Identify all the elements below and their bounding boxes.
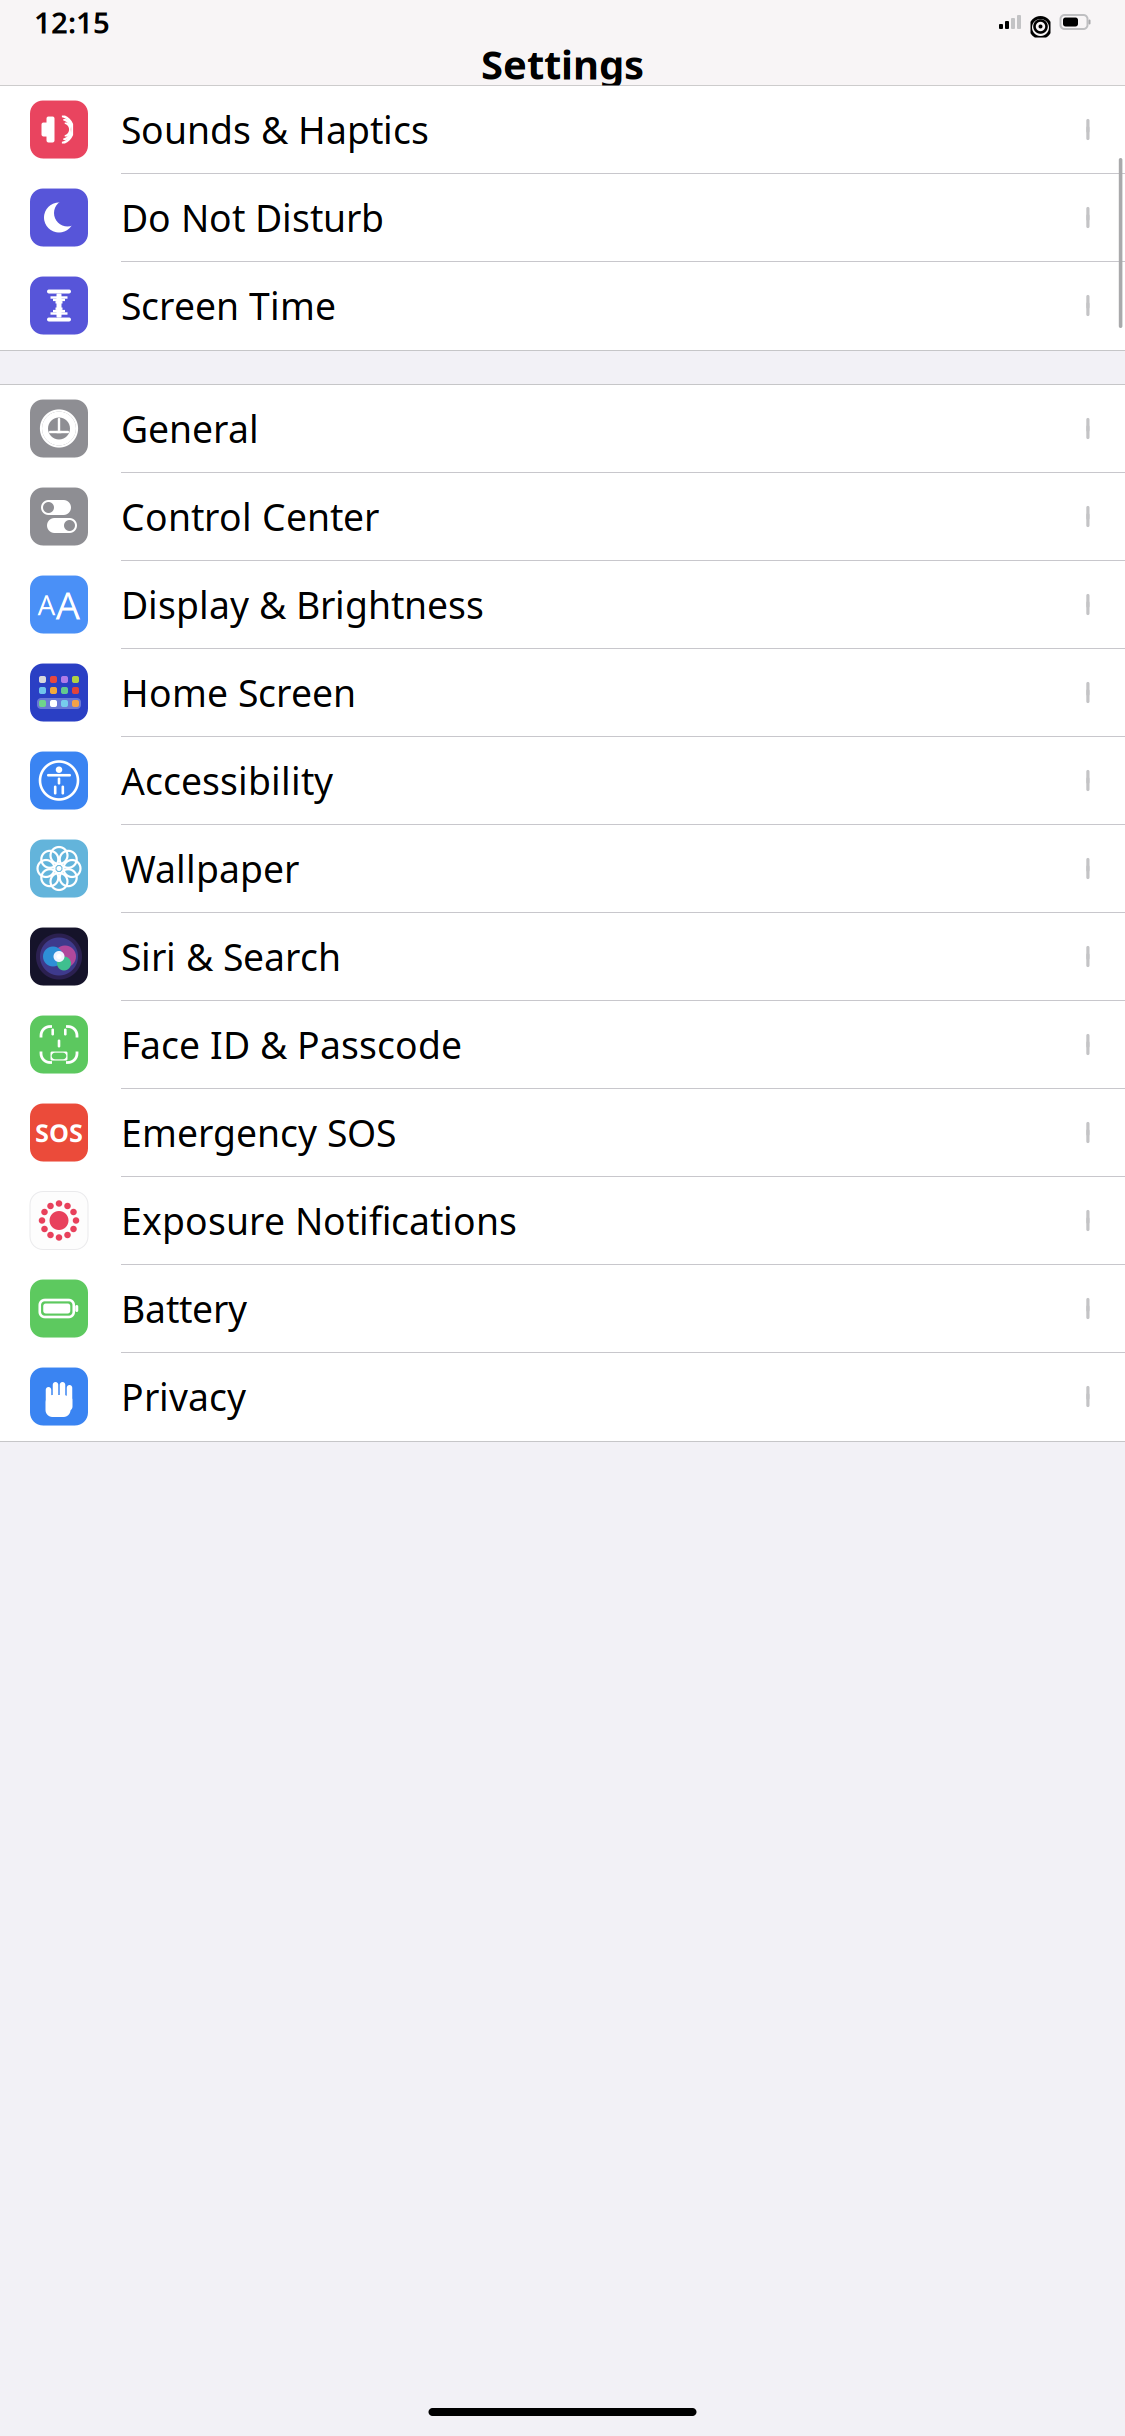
staticText: Screen Time (121, 281, 336, 330)
staticText: Control Center (121, 492, 379, 541)
button[interactable]: Face ID & Passcode (0, 1001, 1125, 1089)
staticText: Sounds & Haptics (121, 105, 429, 154)
staticText: Home Screen (121, 668, 356, 717)
button[interactable]: Do Not Disturb (0, 174, 1125, 262)
button[interactable]: Exposure Notifications (0, 1177, 1125, 1265)
staticText: A (37, 586, 55, 623)
staticText: General (121, 404, 259, 453)
button[interactable]: Home Screen (0, 649, 1125, 737)
staticText: SOS (35, 1116, 83, 1149)
staticText: 12:15 (34, 2, 110, 41)
button[interactable]: Wallpaper (0, 825, 1125, 913)
button[interactable]: Siri & Search (0, 913, 1125, 1001)
button[interactable]: Battery (0, 1265, 1125, 1353)
staticText: Do Not Disturb (121, 193, 384, 242)
button[interactable]: SOS (0, 1089, 1125, 1177)
staticText: Exposure Notifications (121, 1196, 517, 1245)
button[interactable]: Accessibility (0, 737, 1125, 825)
staticText: Settings (481, 37, 644, 90)
staticText: Battery (121, 1284, 247, 1333)
staticText: Face ID & Passcode (121, 1020, 462, 1069)
button[interactable]: Screen Time (0, 262, 1125, 350)
staticText: Emergency SOS (121, 1108, 396, 1157)
staticText: A (55, 579, 80, 630)
staticText: Privacy (121, 1372, 246, 1421)
button[interactable]: Control Center (0, 473, 1125, 561)
staticText: Wallpaper (121, 844, 299, 893)
button[interactable]: General (0, 385, 1125, 473)
staticText: Accessibility (121, 756, 333, 805)
button[interactable]: Privacy (0, 1353, 1125, 1441)
staticText: Siri & Search (121, 932, 341, 981)
button[interactable]: A (0, 561, 1125, 649)
button[interactable]: Sounds & Haptics (0, 86, 1125, 174)
staticText: Display & Brightness (121, 580, 484, 629)
